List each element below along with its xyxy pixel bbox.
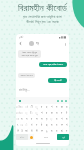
button[interactable]: য: [54, 116, 59, 122]
staticText: ঝ: [61, 130, 63, 133]
button[interactable]: ঃ: [20, 122, 24, 128]
button[interactable]: ঙ: [44, 128, 49, 134]
button[interactable]: Back: [18, 41, 23, 46]
staticText: ঈ: [31, 130, 33, 133]
button[interactable]: ঔ: [16, 128, 20, 134]
staticText: ি: [30, 112, 33, 115]
button[interactable]: ছ: [44, 122, 49, 128]
button[interactable]: য়: [44, 116, 49, 122]
button[interactable]: ৈ: [20, 104, 24, 110]
button[interactable]: ব: [29, 116, 34, 122]
staticText: ব: [41, 106, 43, 109]
button[interactable]: থ: [64, 122, 69, 128]
button[interactable]: ে: [20, 110, 24, 116]
button[interactable]: ত: [54, 110, 59, 116]
button[interactable]: ৎ: [16, 122, 20, 128]
button[interactable]: Keyboard tool: [65, 100, 67, 102]
button[interactable]: Send: [57, 134, 69, 140]
button[interactable]: ়: [49, 116, 54, 122]
staticText: গ: [51, 106, 53, 109]
staticText: ঐ: [21, 130, 23, 133]
button[interactable]: ক: [49, 110, 54, 116]
button[interactable]: আজকে দেখা হবে: [18, 73, 35, 78]
button[interactable]: ঝ: [59, 128, 64, 134]
staticText: দ: [56, 106, 58, 109]
button[interactable]: Keyboard tool: [57, 100, 59, 102]
staticText: চ: [61, 112, 63, 115]
button[interactable]: ধ: [54, 122, 59, 128]
button[interactable]: হ্যাঁ অবশ্যই: [48, 78, 67, 83]
button[interactable]: ল: [34, 116, 39, 122]
staticText: ঁ: [25, 124, 28, 127]
button[interactable]: Emoji: [28, 134, 34, 140]
button[interactable]: ঘ: [49, 128, 54, 134]
button[interactable]: বাংলা: [34, 134, 57, 140]
button[interactable]: ঈ: [29, 128, 34, 134]
button[interactable]: ভালো আছি ধন্যবাদ তোমাকে: [39, 62, 67, 67]
button[interactable]: ঠ: [39, 122, 44, 128]
button[interactable]: ূ: [34, 104, 39, 110]
button[interactable]: ড: [64, 104, 69, 110]
button[interactable]: Symbols: [16, 134, 28, 140]
button[interactable]: ো: [16, 110, 20, 116]
staticText: ত: [56, 112, 58, 115]
button[interactable]: আ: [24, 128, 29, 134]
button[interactable]: ঁ: [24, 122, 29, 128]
button[interactable]: স: [39, 116, 44, 122]
staticText: ী: [30, 106, 33, 109]
button[interactable]: ষ: [64, 116, 69, 122]
staticText: প: [41, 112, 43, 115]
button[interactable]: গ: [49, 104, 54, 110]
staticText: থ: [66, 124, 68, 127]
button[interactable]: া: [24, 104, 29, 110]
button[interactable]: চ: [59, 110, 64, 116]
staticText: ়: [50, 118, 53, 121]
button[interactable]: শ: [59, 116, 64, 122]
button[interactable]: ম: [20, 116, 24, 122]
staticText: ট: [66, 112, 68, 115]
staticText: ঔ: [17, 130, 19, 133]
button[interactable]: ভ: [59, 122, 64, 128]
staticText: র: [46, 112, 48, 115]
staticText: ল: [36, 118, 38, 121]
button[interactable]: ী: [29, 104, 34, 110]
staticText: ঘ: [51, 130, 53, 133]
button[interactable]: Keyboard tool: [61, 100, 63, 102]
button[interactable]: ৌ: [16, 104, 20, 110]
button[interactable]: র: [44, 110, 49, 116]
staticText: ছ: [46, 124, 48, 127]
button[interactable]: ঢ: [64, 128, 69, 134]
staticText: ঃ: [20, 124, 24, 127]
staticText: ষ: [66, 118, 68, 121]
button[interactable]: প: [39, 110, 44, 116]
staticText: বাংলা: [44, 136, 48, 138]
button[interactable]: দ: [54, 104, 59, 110]
staticText: স: [41, 118, 43, 121]
button[interactable]: ি: [29, 110, 34, 116]
button[interactable]: জ: [59, 104, 64, 110]
button[interactable]: ঐ: [20, 128, 24, 134]
button[interactable]: ঊ: [34, 128, 39, 134]
button[interactable]: ট: [64, 110, 69, 116]
button[interactable]: ঢ: [34, 122, 39, 128]
button[interactable]: More options: [63, 42, 67, 46]
button[interactable]: ধ: [54, 128, 59, 134]
button[interactable]: ্: [24, 110, 29, 116]
button[interactable]: বার্তা লিখুন...: [16, 87, 69, 97]
button[interactable]: ণ: [29, 122, 34, 128]
button[interactable]: ং: [16, 116, 20, 122]
button[interactable]: ঘ: [49, 122, 54, 128]
button[interactable]: ু: [34, 110, 39, 116]
staticText: া: [25, 106, 28, 109]
staticText: ু: [35, 112, 38, 115]
staticText: ঠ: [41, 124, 43, 127]
button[interactable]: Voice input: [18, 99, 21, 102]
button[interactable]: ভ: [39, 128, 44, 134]
button[interactable]: ব: [39, 104, 44, 110]
staticText: য: [56, 118, 58, 121]
staticText: ম: [21, 118, 23, 121]
button[interactable]: কেমন আছো বন্ধু তুমি আজকে কি করছো তুমি: [18, 50, 41, 58]
staticText: ধ: [56, 130, 58, 133]
button[interactable]: ন: [24, 116, 29, 122]
button[interactable]: হ: [44, 104, 49, 110]
